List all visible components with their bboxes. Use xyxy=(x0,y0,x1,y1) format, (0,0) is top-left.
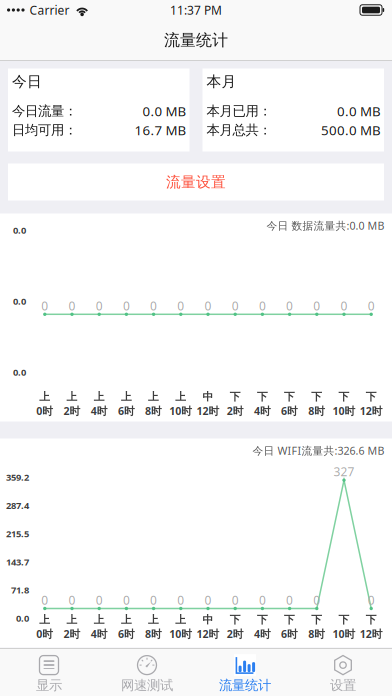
staticText: 上 xyxy=(175,390,186,403)
staticText: 12时 xyxy=(360,404,383,418)
staticText: 0.0 xyxy=(13,295,26,307)
staticText: 0 xyxy=(96,298,103,314)
staticText: 下 xyxy=(366,390,377,403)
staticText: 359.2 xyxy=(6,471,29,483)
staticText: 8时 xyxy=(308,627,325,641)
staticText: 0.0 MB xyxy=(142,102,186,120)
staticText: 上 xyxy=(39,613,50,626)
staticText: 下 xyxy=(311,613,322,626)
staticText: 上 xyxy=(66,390,77,403)
staticText: 0 xyxy=(123,298,130,314)
staticText: 0 xyxy=(259,298,266,314)
staticText: 0 xyxy=(259,592,266,608)
staticText: 下 xyxy=(338,390,349,403)
staticText: 下 xyxy=(257,613,268,626)
staticText: Carrier xyxy=(30,2,70,18)
staticText: 0 xyxy=(41,298,48,314)
staticText: 4时 xyxy=(254,404,271,418)
staticText: 下 xyxy=(366,613,377,626)
staticText: 今日 数据流量共:0.0 MB xyxy=(266,218,384,233)
staticText: 0时 xyxy=(36,404,53,418)
staticText: 0 xyxy=(232,298,239,314)
staticText: 6时 xyxy=(281,404,298,418)
button[interactable]: 设置 xyxy=(294,649,392,696)
staticText: 0 xyxy=(313,298,320,314)
staticText: 流量统计 xyxy=(219,677,271,693)
staticText: 0 xyxy=(368,298,375,314)
staticText: 上 xyxy=(148,390,159,403)
staticText: 8时 xyxy=(308,404,325,418)
staticText: 中 xyxy=(202,613,213,626)
button[interactable]: 流量统计 xyxy=(196,649,294,696)
staticText: 2时 xyxy=(63,404,80,418)
staticText: 上 xyxy=(94,390,105,403)
button[interactable]: 流量设置 xyxy=(8,163,384,200)
staticText: 网速测试 xyxy=(121,677,173,693)
staticText: 0 xyxy=(368,592,375,608)
staticText: 6时 xyxy=(118,404,135,418)
staticText: 143.7 xyxy=(6,556,29,568)
staticText: 0 xyxy=(96,592,103,608)
staticText: 12时 xyxy=(196,404,219,418)
button[interactable]: 显示 xyxy=(0,649,98,696)
staticText: 下 xyxy=(284,390,295,403)
staticText: 上 xyxy=(39,390,50,403)
staticText: 0 xyxy=(232,592,239,608)
staticText: 中 xyxy=(202,390,213,403)
staticText: 上 xyxy=(175,613,186,626)
staticText: 本月 xyxy=(206,72,236,90)
staticText: 12时 xyxy=(360,627,383,641)
staticText: 4时 xyxy=(254,627,271,641)
staticText: 0 xyxy=(340,298,347,314)
button[interactable]: 网速测试 xyxy=(98,649,196,696)
staticText: 上 xyxy=(94,613,105,626)
staticText: 4时 xyxy=(91,627,108,641)
staticText: 71.8 xyxy=(11,584,29,596)
staticText: 11:37 PM xyxy=(170,2,222,18)
staticText: 上 xyxy=(148,613,159,626)
staticText: 8时 xyxy=(145,404,162,418)
staticText: 上 xyxy=(121,613,132,626)
staticText: 下 xyxy=(338,613,349,626)
staticText: 今日流量： xyxy=(12,103,77,119)
staticText: 今日 WIFI流量共:326.6 MB xyxy=(252,443,384,458)
staticText: 0 xyxy=(286,592,293,608)
staticText: 本月已用： xyxy=(206,103,271,119)
staticText: 2时 xyxy=(227,627,244,641)
staticText: 本月总共： xyxy=(206,122,271,138)
staticText: 12时 xyxy=(196,627,219,641)
staticText: 4时 xyxy=(91,404,108,418)
staticText: 0 xyxy=(286,298,293,314)
staticText: 下 xyxy=(230,613,241,626)
staticText: 0 xyxy=(150,298,157,314)
staticText: 10时 xyxy=(169,627,192,641)
staticText: 日均可用： xyxy=(12,122,77,138)
staticText: 215.5 xyxy=(6,527,29,540)
staticText: 流量统计 xyxy=(164,30,228,50)
staticText: 0.0 xyxy=(13,224,26,236)
staticText: 设置 xyxy=(330,677,356,693)
staticText: 10时 xyxy=(169,404,192,418)
staticText: 2时 xyxy=(227,404,244,418)
staticText: 下 xyxy=(284,613,295,626)
staticText: 上 xyxy=(121,390,132,403)
staticText: 0 xyxy=(68,592,75,608)
staticText: 0 xyxy=(150,592,157,608)
staticText: 下 xyxy=(230,390,241,403)
staticText: 0 xyxy=(204,592,211,608)
staticText: 10时 xyxy=(332,404,355,418)
staticText: 0 xyxy=(177,592,184,608)
staticText: 0.0 MB xyxy=(337,102,381,120)
staticText: 500.0 MB xyxy=(321,121,381,139)
staticText: 流量设置 xyxy=(166,173,226,191)
staticText: 上 xyxy=(66,613,77,626)
staticText: 327 xyxy=(333,464,354,480)
staticText: 0 xyxy=(41,592,48,608)
staticText: 0 xyxy=(177,298,184,314)
staticText: 0 xyxy=(313,592,320,608)
staticText: 6时 xyxy=(118,627,135,641)
staticText: 0时 xyxy=(36,627,53,641)
staticText: 下 xyxy=(257,390,268,403)
staticText: 显示 xyxy=(36,677,62,693)
staticText: 下 xyxy=(311,390,322,403)
